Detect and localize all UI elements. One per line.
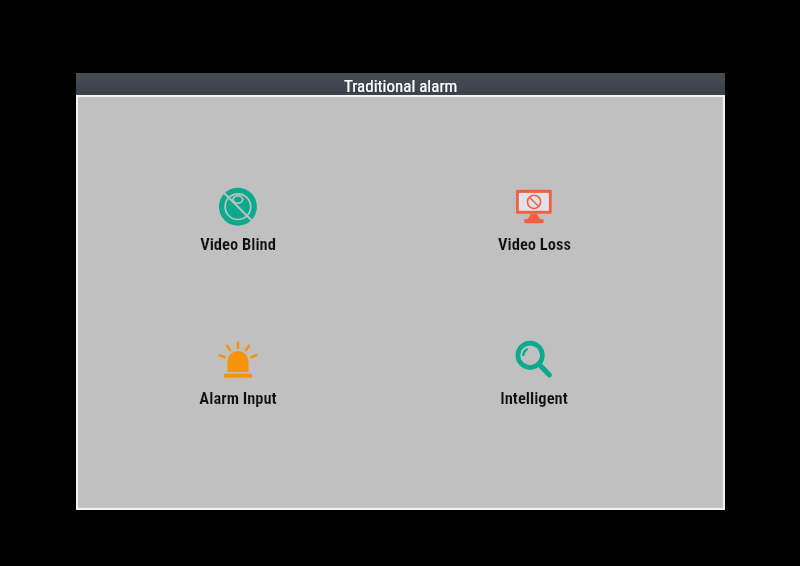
button[interactable]: Video Loss — [459, 187, 609, 249]
staticText: Video Loss — [498, 235, 571, 253]
button[interactable]: Intelligent — [459, 341, 609, 403]
staticText: Intelligent — [500, 389, 568, 407]
staticText: Traditional alarm — [344, 76, 458, 96]
staticText: Alarm Input — [199, 389, 277, 407]
button[interactable]: Alarm Input — [163, 341, 313, 403]
button[interactable]: Video Blind — [163, 187, 313, 249]
staticText: Video Blind — [200, 235, 276, 253]
